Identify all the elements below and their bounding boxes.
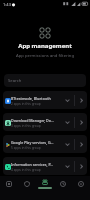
staticText: Search	[8, 78, 22, 84]
staticText: 2 apps in this group	[11, 102, 41, 106]
button[interactable]: Information services, P...	[3, 157, 87, 175]
button[interactable]: Download Manager, Do...	[3, 113, 87, 131]
staticText: 5 apps in this group	[11, 146, 41, 150]
button[interactable]: Open	[75, 157, 87, 175]
staticText: App permissions and filtering	[0, 53, 90, 59]
staticText: Information services, P...	[11, 162, 54, 167]
button[interactable]: BTtestmode, Bluetooth	[3, 91, 87, 109]
button[interactable]: Search	[4, 74, 86, 87]
button[interactable]: Battery	[54, 176, 72, 200]
staticText: BTtestmode, Bluetooth	[11, 96, 51, 101]
button[interactable]: Google Play services, G...	[3, 135, 87, 153]
staticText: 1:43	[3, 2, 11, 7]
button[interactable]: Expand	[61, 157, 74, 175]
staticText: 3 apps in this group	[11, 124, 41, 128]
staticText: Google Play services, G...	[11, 140, 54, 145]
button[interactable]: Apps	[36, 176, 54, 200]
button[interactable]: Expand	[61, 135, 74, 153]
button[interactable]: Security	[18, 176, 36, 200]
button[interactable]: Open	[75, 113, 87, 131]
button[interactable]: Home	[0, 176, 18, 200]
button[interactable]: Expand	[61, 113, 74, 131]
button[interactable]: Open	[75, 91, 87, 109]
staticText: App management	[0, 42, 90, 50]
staticText: Download Manager, Do...	[11, 118, 54, 123]
button[interactable]: Settings	[72, 176, 90, 200]
button[interactable]: Expand	[61, 91, 74, 109]
button[interactable]: Open	[75, 135, 87, 153]
staticText: 4 apps in this group	[11, 168, 41, 172]
